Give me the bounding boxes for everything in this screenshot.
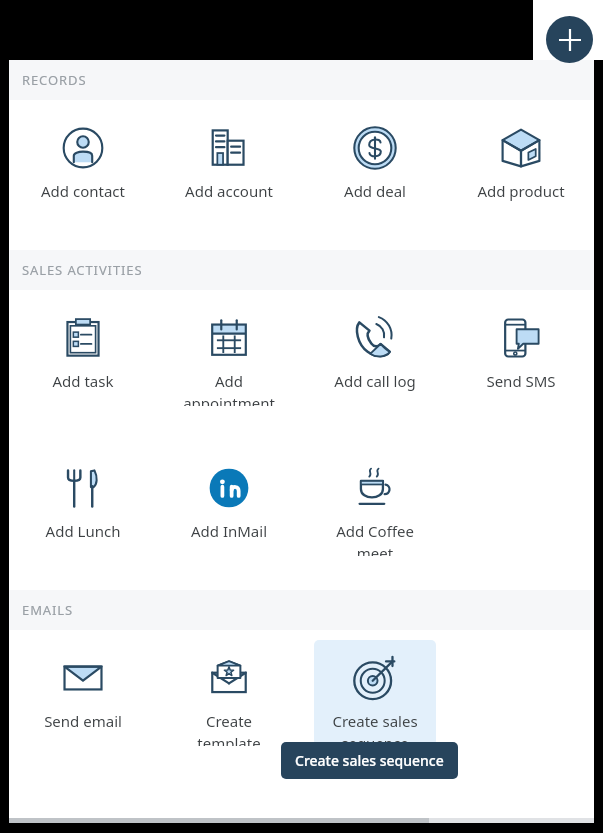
button[interactable]: Add account [168, 110, 290, 216]
staticText: Add Lunch [22, 521, 144, 541]
button[interactable]: Add [546, 16, 593, 63]
staticText: Add task [22, 371, 144, 391]
staticText: Add Coffee meet [314, 521, 436, 556]
staticText: Send SMS [460, 371, 582, 391]
staticText: EMAILS [22, 601, 74, 619]
staticText: Add product [460, 181, 582, 201]
button[interactable]: Add Lunch [22, 450, 144, 556]
staticText: Add contact [22, 181, 144, 201]
button[interactable]: Add call log [314, 300, 436, 406]
button[interactable]: Add InMail [168, 450, 290, 556]
button[interactable]: Add appointment [168, 300, 290, 406]
staticText: Create sales sequence [314, 711, 436, 746]
button[interactable]: Send email [22, 640, 144, 746]
staticText: Create template [168, 711, 290, 746]
button[interactable]: Add contact [22, 110, 144, 216]
staticText: Add call log [314, 371, 436, 391]
staticText: Add InMail [168, 521, 290, 541]
button[interactable]: Send SMS [460, 300, 582, 406]
staticText: Create sales sequence [295, 751, 444, 770]
staticText: Send email [22, 711, 144, 731]
button[interactable]: Create sales sequence [314, 640, 436, 746]
button[interactable]: Add Coffee meet [314, 450, 436, 556]
button[interactable]: Add task [22, 300, 144, 406]
staticText: Add appointment [168, 371, 290, 406]
button[interactable]: Create template [168, 640, 290, 746]
staticText: RECORDS [22, 71, 87, 89]
staticText: SALES ACTIVITIES [22, 261, 143, 279]
staticText: Add account [168, 181, 290, 201]
button[interactable]: Add product [460, 110, 582, 216]
button[interactable]: Add deal [314, 110, 436, 216]
staticText: Add deal [314, 181, 436, 201]
